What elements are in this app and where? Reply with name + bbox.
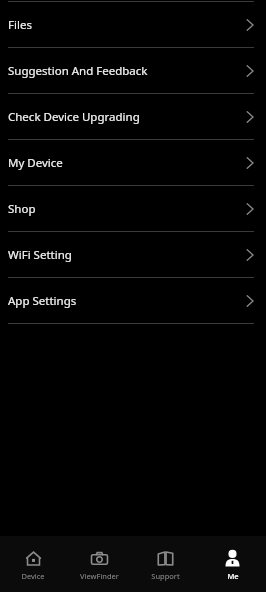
staticText: Me — [227, 571, 239, 581]
staticText: WiFi Setting — [8, 247, 72, 263]
button[interactable]: My Device — [0, 140, 266, 185]
staticText: ViewFinder — [80, 571, 119, 581]
staticText: Suggestion And Feedback — [8, 63, 148, 79]
staticText: Device — [21, 571, 45, 581]
staticText: My Device — [8, 155, 63, 171]
button[interactable]: Suggestion And Feedback — [0, 48, 266, 93]
staticText: Files — [8, 17, 32, 33]
staticText: Check Device Upgrading — [8, 109, 140, 125]
button[interactable]: ViewFinder — [66, 536, 132, 592]
button[interactable]: Shop — [0, 186, 266, 231]
button[interactable]: Files — [0, 2, 266, 47]
button[interactable]: Me — [199, 536, 266, 592]
button[interactable]: Support — [132, 536, 199, 592]
button[interactable]: WiFi Setting — [0, 232, 266, 277]
staticText: Shop — [8, 201, 36, 217]
button[interactable]: App Settings — [0, 278, 266, 323]
staticText: App Settings — [8, 293, 77, 309]
staticText: Support — [151, 571, 180, 581]
button[interactable]: Check Device Upgrading — [0, 94, 266, 139]
button[interactable]: Device — [0, 536, 66, 592]
